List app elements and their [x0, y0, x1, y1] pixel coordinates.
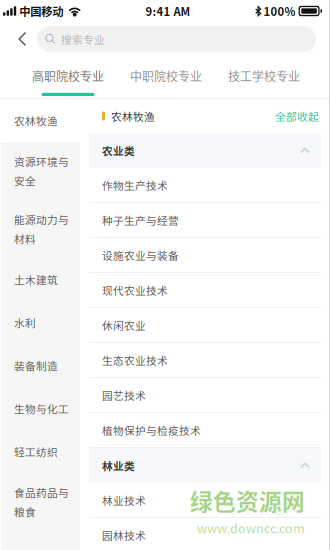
button[interactable]: 种子生产与经营 [89, 203, 321, 238]
button[interactable]: 设施农业与装备 [89, 238, 321, 273]
staticText: 休闲农业 [102, 317, 146, 333]
staticText: 食品药品与 [14, 485, 69, 500]
button[interactable]: 林业技术 [89, 483, 321, 518]
staticText: 园林技术 [102, 527, 146, 543]
staticText: 装备制造 [14, 358, 58, 373]
staticText: 100% [264, 3, 296, 19]
button[interactable]: 装备制造 [1, 344, 80, 387]
staticText: 林业类 [102, 458, 135, 473]
button[interactable]: 作物生产技术 [89, 168, 321, 203]
staticText: 能源动力与 [14, 212, 69, 227]
button[interactable]: 生态农业技术 [89, 343, 321, 378]
staticText: 园艺技术 [102, 387, 146, 403]
button[interactable]: 中职院校专业 [130, 56, 202, 98]
staticText: 安全 [14, 173, 36, 188]
staticText: 生物与化工 [14, 401, 69, 416]
button[interactable]: 现代农业技术 [89, 273, 321, 308]
staticText: 农林牧渔 [14, 113, 58, 128]
button[interactable]: 资源环境与 [1, 142, 80, 200]
staticText: 现代农业技术 [102, 282, 168, 298]
staticText: 绿色资源网 [190, 484, 305, 517]
staticText: 作物生产技术 [102, 177, 168, 193]
staticText: 植物保护与检疫技术 [102, 422, 201, 438]
staticText: 林业技术 [102, 492, 146, 508]
staticText: 资源环境与 [14, 154, 69, 169]
button[interactable]: 农林牧渔 [1, 99, 80, 142]
button[interactable]: 园林技术 [89, 518, 321, 550]
button[interactable]: 林业类 [89, 448, 321, 483]
staticText: 农业类 [102, 143, 135, 158]
button[interactable]: 农业类 [89, 133, 321, 168]
button[interactable]: 能源动力与 [1, 200, 80, 258]
button[interactable]: 水利 [1, 301, 80, 344]
button[interactable]: 休闲农业 [89, 308, 321, 343]
button[interactable]: Back [12, 24, 33, 54]
staticText: 种子生产与经营 [102, 212, 179, 228]
staticText: 9:41 AM [145, 3, 190, 19]
staticText: 水利 [14, 315, 36, 330]
staticText: 设施农业与装备 [102, 247, 179, 263]
button[interactable]: 搜索专业 [37, 26, 316, 52]
staticText: 高职院校专业 [32, 67, 104, 85]
button[interactable]: 轻工纺织 [1, 430, 80, 473]
staticText: 中国移动 [19, 3, 63, 19]
button[interactable]: 植物保护与检疫技术 [89, 413, 321, 448]
staticText: www.downcc.com [197, 519, 305, 537]
button[interactable]: 技工学校专业 [228, 56, 300, 98]
staticText: 生态农业技术 [102, 352, 168, 368]
button[interactable]: 生物与化工 [1, 387, 80, 430]
button[interactable]: 食品药品与 [1, 473, 80, 531]
staticText: 技工学校专业 [228, 67, 300, 85]
staticText: 全部收起 [275, 108, 319, 124]
staticText: 中职院校专业 [130, 67, 202, 85]
button[interactable]: 全部收起 [275, 108, 319, 124]
button[interactable]: 土木建筑 [1, 258, 80, 301]
staticText: 材料 [14, 231, 36, 246]
button[interactable]: 高职院校专业 [32, 56, 104, 98]
staticText: 搜索专业 [61, 31, 105, 47]
button[interactable]: 园艺技术 [89, 378, 321, 413]
staticText: 轻工纺织 [14, 444, 58, 459]
staticText: 农林牧渔 [111, 108, 155, 124]
staticText: 粮食 [14, 504, 36, 519]
staticText: 土木建筑 [14, 272, 58, 287]
